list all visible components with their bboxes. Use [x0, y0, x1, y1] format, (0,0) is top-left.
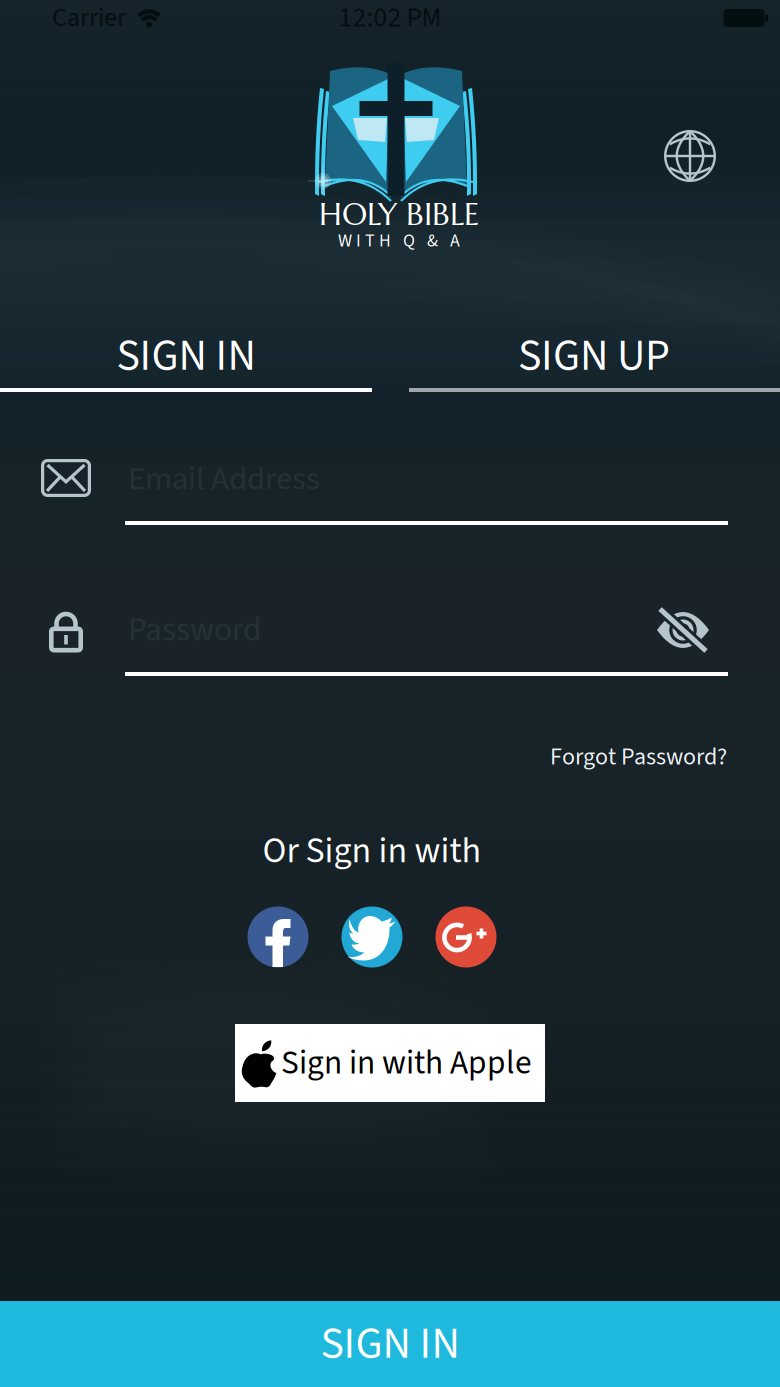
staticText: Password: [128, 606, 262, 654]
staticText: Sign in with Apple: [281, 1039, 532, 1087]
staticText: Or Sign in with: [262, 825, 481, 877]
button[interactable]: SIGN IN: [0, 310, 372, 402]
button[interactable]: Change language: [664, 130, 716, 182]
button[interactable]: Show password: [655, 607, 711, 653]
button[interactable]: Forgot Password?: [497, 729, 727, 785]
staticText: 12:02 PM: [338, 0, 441, 37]
staticText: SIGN UP: [518, 325, 670, 387]
staticText: HOLY BIBLE: [319, 194, 479, 234]
button[interactable]: SIGN UP: [408, 310, 780, 402]
staticText: Forgot Password?: [550, 740, 727, 774]
staticText: Email Address: [128, 456, 320, 502]
button[interactable]: Sign in with Facebook: [247, 906, 308, 967]
staticText: SIGN IN: [116, 325, 255, 387]
button[interactable]: Sign in with Apple: [235, 1024, 545, 1102]
button[interactable]: Sign in with Google: [435, 906, 496, 967]
staticText: W I T H Q & A: [338, 228, 460, 254]
button[interactable]: SIGN IN: [0, 1301, 780, 1387]
staticText: Carrier: [52, 0, 126, 36]
staticText: SIGN IN: [320, 1313, 459, 1375]
button[interactable]: Sign in with Twitter: [341, 906, 402, 967]
